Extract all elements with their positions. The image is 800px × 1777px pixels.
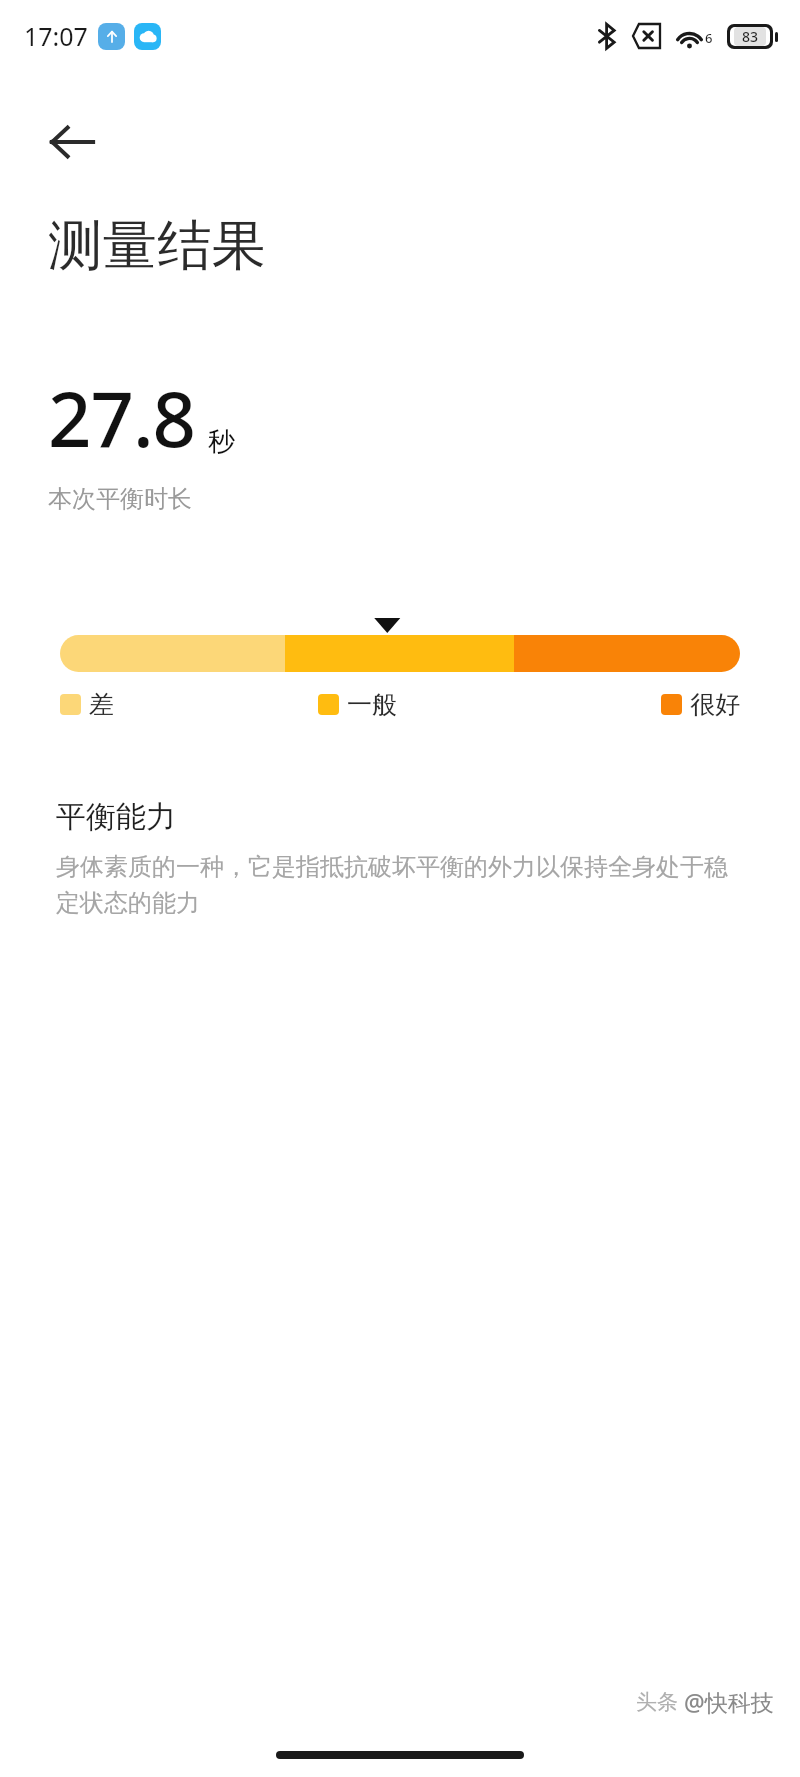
- staticText: 27.8: [48, 366, 196, 470]
- staticText: 测量结果: [48, 212, 266, 280]
- staticText: 秒: [208, 425, 235, 459]
- staticText: 6: [705, 29, 713, 47]
- staticText: @快科技: [684, 1686, 774, 1717]
- staticText: 平衡能力: [56, 798, 176, 836]
- staticText: 一般: [347, 689, 397, 720]
- staticText: 本次平衡时长: [48, 484, 192, 514]
- staticText: 身体素质的一种，它是指抵抗破坏平衡的外力以保持全身处于稳定状态的能力: [56, 852, 738, 918]
- staticText: 头条: [636, 1689, 678, 1715]
- button[interactable]: Back: [34, 104, 110, 180]
- staticText: 很好: [690, 689, 740, 720]
- staticText: 17:07: [24, 19, 88, 53]
- staticText: 差: [89, 689, 114, 720]
- staticText: 83: [742, 27, 759, 46]
